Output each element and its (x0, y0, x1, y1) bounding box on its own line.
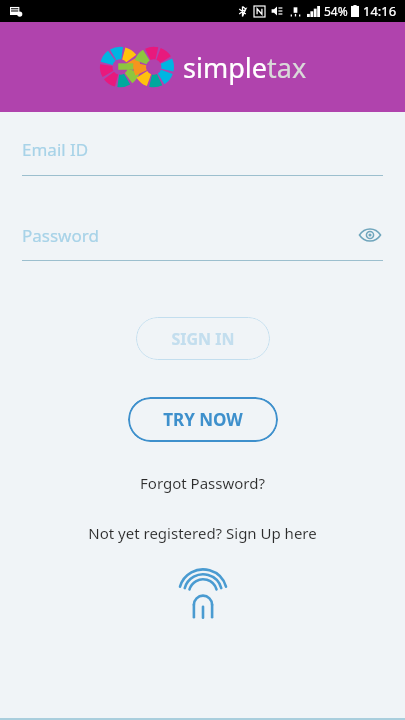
button[interactable]: Forgot Password? (0, 473, 405, 493)
button[interactable]: Not yet registered? Sign Up here (0, 523, 405, 543)
staticText: tax (267, 49, 307, 86)
staticText: 54% (324, 3, 348, 19)
button[interactable]: Show password (357, 222, 383, 248)
staticText: simple (183, 49, 267, 86)
button[interactable]: Fingerprint login (176, 571, 230, 625)
staticText: TRY NOW (163, 408, 243, 431)
staticText: SIGN IN (171, 328, 235, 350)
button[interactable]: Email ID (22, 138, 383, 176)
staticText: 14:16 (363, 2, 397, 20)
staticText: Email ID (22, 138, 89, 161)
button[interactable]: TRY NOW (128, 397, 278, 442)
button[interactable]: SIGN IN (136, 317, 270, 360)
button[interactable]: Password (22, 224, 357, 247)
